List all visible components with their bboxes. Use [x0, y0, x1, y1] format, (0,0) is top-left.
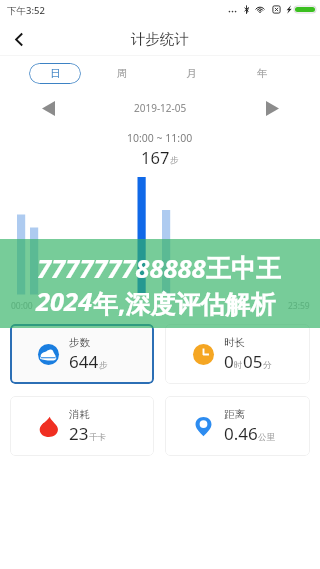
- staticText: 23: [69, 422, 89, 445]
- button[interactable]: Back: [5, 25, 33, 53]
- button[interactable]: 时长: [165, 324, 310, 384]
- staticText: 步数: [69, 336, 90, 349]
- staticText: 644: [69, 350, 99, 373]
- staticText: 下午3:52: [7, 4, 45, 17]
- staticText: 消耗: [69, 408, 90, 421]
- staticText: 时: [234, 360, 243, 371]
- staticText: 0.46: [224, 422, 258, 445]
- staticText: 公里: [258, 432, 275, 443]
- button[interactable]: Next day: [260, 96, 284, 120]
- staticText: 王中王: [206, 253, 281, 284]
- staticText: 23:59: [288, 300, 310, 312]
- staticText: 周: [117, 67, 128, 80]
- staticText: 月: [186, 67, 197, 80]
- staticText: 时长: [224, 336, 245, 349]
- staticText: 0: [224, 350, 234, 373]
- staticText: 步: [170, 155, 179, 166]
- staticText: 2024: [36, 284, 93, 319]
- staticText: 日: [50, 67, 61, 80]
- staticText: 分: [263, 360, 272, 371]
- staticText: 2019-12-05: [134, 101, 187, 115]
- staticText: 年: [257, 67, 268, 80]
- button[interactable]: 月: [177, 63, 205, 84]
- staticText: 05: [243, 350, 263, 373]
- button[interactable]: 年: [248, 63, 276, 84]
- staticText: 777777788888: [37, 251, 206, 286]
- staticText: 步: [99, 360, 108, 371]
- staticText: 千卡: [89, 432, 106, 443]
- staticText: 10:00 ~ 11:00: [127, 131, 193, 145]
- button[interactable]: 距离: [165, 396, 310, 456]
- staticText: 167: [141, 146, 170, 168]
- button[interactable]: 日: [29, 63, 81, 84]
- staticText: 计步统计: [131, 30, 189, 48]
- staticText: 00:00: [11, 300, 33, 312]
- button[interactable]: Previous day: [36, 96, 60, 120]
- button[interactable]: 周: [108, 63, 136, 84]
- staticText: 年,深度评估解析: [93, 286, 276, 320]
- button[interactable]: 步数: [10, 324, 154, 384]
- button[interactable]: 消耗: [10, 396, 154, 456]
- staticText: 距离: [224, 408, 245, 421]
